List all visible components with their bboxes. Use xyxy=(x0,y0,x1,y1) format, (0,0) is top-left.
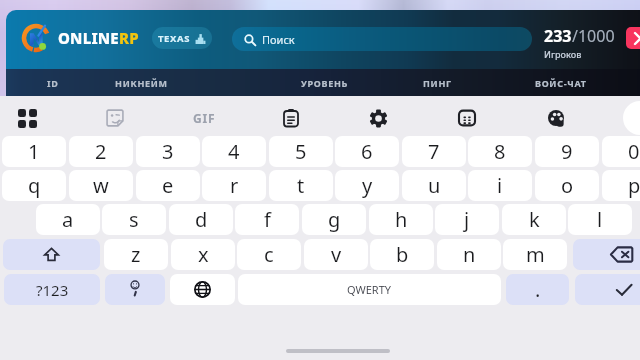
button[interactable]: Number pad xyxy=(447,98,487,138)
staticText: b xyxy=(396,241,409,268)
button[interactable]: 8 xyxy=(468,136,532,167)
staticText: ВОЙС-ЧАТ xyxy=(535,77,587,89)
staticText: 5 xyxy=(295,138,307,165)
button[interactable]: Apps xyxy=(7,98,47,138)
button[interactable]: h xyxy=(369,204,433,235)
button[interactable]: k xyxy=(502,204,566,235)
button[interactable]: ВОЙС-ЧАТ xyxy=(511,69,611,96)
button[interactable]: p xyxy=(602,170,640,201)
button[interactable]: i xyxy=(468,170,532,201)
button[interactable]: v xyxy=(304,239,368,270)
button[interactable]: Поиск xyxy=(232,27,532,51)
staticText: ONLINE xyxy=(58,28,119,48)
button[interactable]: z xyxy=(104,239,168,270)
button[interactable]: r xyxy=(202,170,266,201)
staticText: t xyxy=(297,172,305,199)
button[interactable]: Change keyboard language xyxy=(170,274,235,305)
button[interactable]: o xyxy=(535,170,599,201)
button[interactable]: Emoji xyxy=(105,274,165,305)
button[interactable]: Close xyxy=(626,27,640,49)
button[interactable]: 1 xyxy=(2,136,66,167)
staticText: . xyxy=(535,276,541,303)
button[interactable]: ?123 xyxy=(4,274,100,305)
button[interactable]: d xyxy=(169,204,233,235)
button[interactable]: Clipboard xyxy=(271,98,311,138)
staticText: d xyxy=(195,206,208,233)
button[interactable]: НИКНЕЙМ xyxy=(91,69,191,96)
staticText: e xyxy=(162,172,174,199)
staticText: a xyxy=(62,206,74,233)
button[interactable]: c xyxy=(237,239,301,270)
staticText: l xyxy=(597,206,603,233)
button[interactable]: u xyxy=(402,170,466,201)
button[interactable]: 2 xyxy=(69,136,133,167)
button[interactable]: 6 xyxy=(335,136,399,167)
button[interactable]: 5 xyxy=(269,136,333,167)
button[interactable]: УРОВЕНЬ xyxy=(275,69,375,96)
staticText: j xyxy=(464,206,470,233)
button[interactable]: Settings xyxy=(358,98,398,138)
staticText: n xyxy=(463,241,476,268)
button[interactable]: 7 xyxy=(402,136,466,167)
staticText: ?123 xyxy=(36,280,69,300)
staticText: 2 xyxy=(95,138,107,165)
staticText: Поиск xyxy=(262,32,295,47)
button[interactable]: 9 xyxy=(535,136,599,167)
staticText: RP xyxy=(119,28,139,48)
staticText: 3 xyxy=(162,138,174,165)
staticText: f xyxy=(264,206,271,233)
button[interactable]: Shift xyxy=(3,239,100,270)
staticText: x xyxy=(198,241,209,268)
button[interactable]: More xyxy=(623,101,640,135)
staticText: c xyxy=(264,241,274,268)
staticText: GIF xyxy=(193,110,216,126)
button[interactable]: g xyxy=(302,204,366,235)
button[interactable]: s xyxy=(102,204,166,235)
staticText: k xyxy=(529,206,540,233)
button[interactable]: Stickers xyxy=(95,98,135,138)
button[interactable]: Theme xyxy=(536,98,576,138)
button[interactable]: e xyxy=(136,170,200,201)
button[interactable]: 4 xyxy=(202,136,266,167)
button[interactable]: b xyxy=(370,239,434,270)
staticText: v xyxy=(331,241,342,268)
staticText: 233 xyxy=(544,25,572,47)
staticText: 4 xyxy=(228,138,240,165)
button[interactable]: w xyxy=(69,170,133,201)
button[interactable]: q xyxy=(2,170,66,201)
staticText: w xyxy=(93,172,109,199)
staticText: m xyxy=(526,241,545,268)
button[interactable]: OnlineRP logo xyxy=(21,23,51,53)
button[interactable]: a xyxy=(36,204,100,235)
button[interactable]: GIF xyxy=(184,98,224,138)
button[interactable]: Enter xyxy=(575,274,640,305)
button[interactable]: l xyxy=(568,204,632,235)
staticText: НИКНЕЙМ xyxy=(115,77,168,89)
staticText: i xyxy=(497,172,503,199)
button[interactable]: n xyxy=(437,239,501,270)
button[interactable]: 3 xyxy=(136,136,200,167)
staticText: o xyxy=(561,172,574,199)
button[interactable]: y xyxy=(335,170,399,201)
button[interactable]: x xyxy=(171,239,235,270)
staticText: q xyxy=(28,172,41,199)
staticText: QWERTY xyxy=(347,282,392,297)
staticText: 0 xyxy=(628,138,640,165)
button[interactable]: t xyxy=(269,170,333,201)
staticText: УРОВЕНЬ xyxy=(301,77,349,89)
staticText: TEXAS xyxy=(158,32,190,45)
button[interactable]: QWERTY xyxy=(238,274,501,305)
staticText: s xyxy=(129,206,139,233)
staticText: 1 xyxy=(28,138,40,165)
button[interactable]: 0 xyxy=(602,136,640,167)
staticText: Игроков xyxy=(544,48,582,60)
button[interactable]: . xyxy=(506,274,569,305)
button[interactable]: Backspace xyxy=(573,239,640,270)
staticText: /1000 xyxy=(572,25,615,47)
button[interactable]: f xyxy=(235,204,299,235)
button[interactable]: m xyxy=(503,239,567,270)
button[interactable]: j xyxy=(435,204,499,235)
button[interactable]: TEXAS xyxy=(152,27,212,49)
button[interactable]: ПИНГ xyxy=(387,69,487,96)
button[interactable]: ID xyxy=(6,69,103,96)
